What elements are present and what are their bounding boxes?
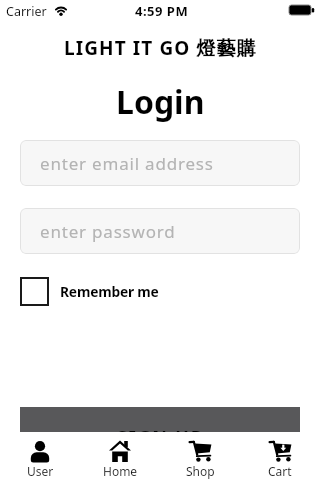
button[interactable]: enter password: [20, 208, 300, 254]
staticText: Shop: [186, 463, 215, 479]
staticText: enter email address: [40, 152, 214, 175]
button[interactable]: Home: [80, 435, 160, 480]
button[interactable]: Shop: [160, 435, 240, 480]
button[interactable]: Remember me: [20, 277, 159, 306]
staticText: Home: [103, 463, 138, 479]
staticText: Login: [116, 80, 205, 124]
staticText: Cart: [268, 463, 292, 479]
staticText: Remember me: [60, 282, 159, 301]
staticText: SIGN UP: [117, 425, 204, 432]
staticText: User: [27, 463, 54, 479]
button[interactable]: SIGN UP: [20, 407, 300, 432]
button[interactable]: User: [0, 435, 80, 480]
button[interactable]: Cart: [240, 435, 320, 480]
staticText: Carrier: [6, 3, 47, 20]
staticText: enter password: [40, 220, 176, 243]
button[interactable]: enter email address: [20, 140, 300, 186]
staticText: 4:59 PM: [135, 2, 189, 20]
staticText: LIGHT IT GO 燈藝購: [64, 35, 257, 61]
